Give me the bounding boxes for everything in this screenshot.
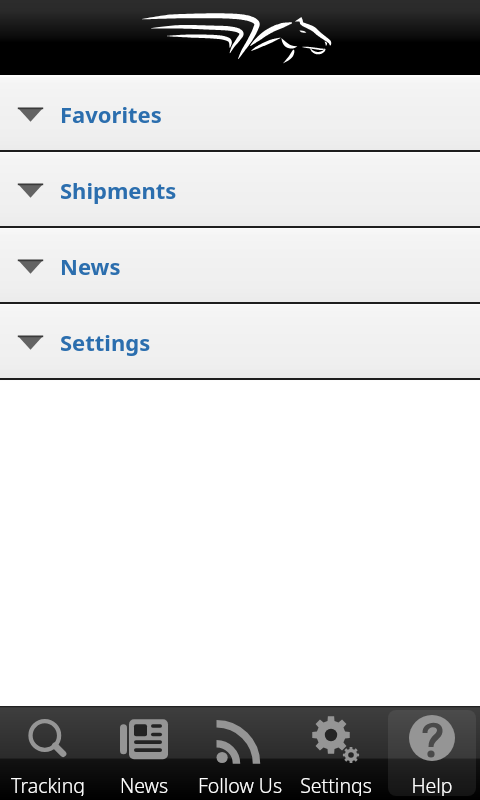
button[interactable]: Help <box>388 710 476 796</box>
button[interactable]: Settings <box>0 305 480 378</box>
staticText: Help <box>388 772 476 796</box>
staticText: Tracking <box>4 772 92 796</box>
staticText: News <box>60 251 121 281</box>
staticText: News <box>100 772 188 796</box>
button[interactable]: Shipments <box>0 153 480 226</box>
staticText: Settings <box>292 772 380 796</box>
button[interactable]: Follow Us <box>196 710 284 796</box>
staticText: Favorites <box>60 99 162 129</box>
button[interactable]: News <box>0 229 480 302</box>
button[interactable]: Favorites <box>0 77 480 150</box>
button[interactable]: Tracking <box>4 710 92 796</box>
staticText: Settings <box>60 327 151 357</box>
button[interactable]: Settings <box>292 710 380 796</box>
staticText: Shipments <box>60 175 177 205</box>
button[interactable]: News <box>100 710 188 796</box>
staticText: Follow Us <box>196 772 284 796</box>
